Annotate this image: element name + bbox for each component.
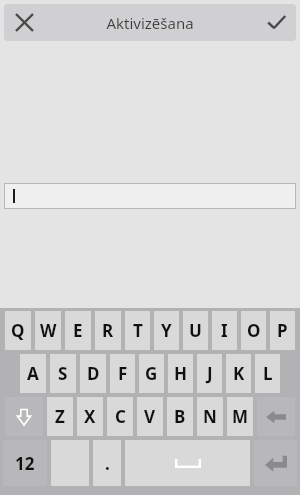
staticText: L [263, 362, 273, 385]
staticText: S [58, 362, 68, 385]
button[interactable]: 12 [3, 440, 47, 486]
button[interactable] [125, 440, 250, 486]
staticText: B [174, 405, 186, 428]
button[interactable]: B [167, 397, 193, 436]
staticText: U [189, 319, 202, 342]
staticText: A [27, 362, 39, 385]
button[interactable]: Confirm [256, 4, 296, 41]
button[interactable]: X [77, 397, 103, 436]
staticText: K [233, 362, 245, 385]
staticText: M [232, 405, 249, 428]
staticText: T [133, 319, 143, 342]
button[interactable]: K [226, 354, 251, 393]
button[interactable]: . [93, 440, 121, 486]
staticText: C [115, 405, 126, 428]
staticText: F [118, 362, 128, 385]
staticText: W [40, 319, 57, 342]
button[interactable]: U [183, 311, 208, 350]
button[interactable]: F [110, 354, 135, 393]
button[interactable]: E [65, 311, 91, 350]
staticText: R [102, 319, 114, 342]
staticText: N [203, 405, 217, 428]
button[interactable]: C [107, 397, 133, 436]
button[interactable]: N [197, 397, 223, 436]
button[interactable]: J [197, 354, 222, 393]
button[interactable]: Q [5, 311, 31, 350]
button[interactable]: V [137, 397, 163, 436]
button[interactable] [4, 183, 296, 209]
staticText: D [87, 362, 100, 385]
button[interactable]: Shift [5, 397, 43, 436]
staticText: Aktivizēšana [106, 13, 194, 33]
button[interactable]: P [270, 311, 295, 350]
button[interactable]: Close [4, 4, 44, 41]
staticText: Z [55, 405, 65, 428]
button[interactable]: Backspace [257, 397, 295, 436]
button[interactable]: W [35, 311, 61, 350]
button[interactable]: L [255, 354, 280, 393]
staticText: . [105, 452, 110, 475]
button[interactable]: A [20, 354, 46, 393]
staticText: X [84, 405, 96, 428]
staticText: V [144, 405, 156, 428]
button[interactable]: T [125, 311, 150, 350]
button[interactable]: R [95, 311, 121, 350]
staticText: G [145, 362, 158, 385]
staticText: Q [11, 319, 25, 342]
button[interactable]: Y [154, 311, 179, 350]
button[interactable]: S [50, 354, 76, 393]
staticText: O [247, 319, 261, 342]
staticText: H [174, 362, 188, 385]
button[interactable]: I [212, 311, 237, 350]
button[interactable]: O [241, 311, 266, 350]
staticText: 12 [15, 452, 35, 475]
staticText: P [277, 319, 288, 342]
staticText: J [207, 362, 213, 385]
staticText: Y [161, 319, 172, 342]
button[interactable] [254, 440, 297, 486]
button[interactable]: Z [47, 397, 73, 436]
button[interactable]: D [80, 354, 106, 393]
staticText: E [73, 319, 83, 342]
button[interactable]: M [227, 397, 253, 436]
button[interactable]: G [139, 354, 164, 393]
button[interactable]: H [168, 354, 193, 393]
staticText: I [221, 319, 228, 342]
